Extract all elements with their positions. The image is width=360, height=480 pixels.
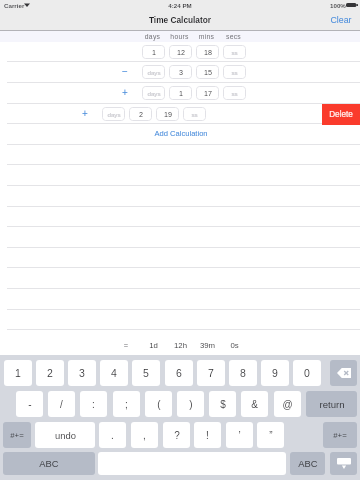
button[interactable]: days <box>102 107 125 121</box>
staticText: #+= <box>10 431 24 440</box>
button[interactable]: 8 <box>229 360 257 386</box>
staticText: @ <box>282 399 293 410</box>
button[interactable]: 18 <box>196 45 219 59</box>
staticText: / <box>60 399 63 410</box>
staticText: days <box>147 90 161 97</box>
button[interactable]: ) <box>177 391 204 417</box>
button[interactable]: ss <box>183 107 206 121</box>
button[interactable]: Backspace <box>330 360 357 386</box>
button[interactable]: . <box>99 422 126 448</box>
button[interactable]: 2 <box>129 107 152 121</box>
staticText: 4:24 PM <box>0 2 360 9</box>
button[interactable]: #+= <box>323 422 357 448</box>
staticText: 2 <box>47 367 53 379</box>
staticText: 12 <box>177 48 185 56</box>
button[interactable]: ; <box>113 391 140 417</box>
button[interactable]: ABC <box>3 452 95 475</box>
button[interactable]: $ <box>209 391 236 417</box>
staticText: Delete <box>329 110 353 119</box>
button[interactable]: 15 <box>196 65 219 79</box>
button[interactable]: ’ <box>226 422 253 448</box>
button[interactable]: 3 <box>169 65 192 79</box>
staticText: ss <box>231 90 238 97</box>
button[interactable]: 1 <box>4 360 32 386</box>
staticText: 9 <box>272 367 278 379</box>
button[interactable]: 12 <box>169 45 192 59</box>
button[interactable]: 17 <box>196 86 219 100</box>
staticText: 0 <box>304 367 310 379</box>
button[interactable]: - <box>16 391 43 417</box>
button[interactable]: ” <box>257 422 284 448</box>
staticText: ) <box>189 399 193 410</box>
staticText: 100% <box>330 2 346 9</box>
button[interactable]: , <box>131 422 158 448</box>
staticText: − <box>118 66 132 77</box>
staticText: $ <box>220 399 226 410</box>
staticText: 39m <box>196 341 219 350</box>
staticText: = <box>119 341 133 349</box>
button[interactable]: ! <box>194 422 221 448</box>
button[interactable]: 9 <box>261 360 289 386</box>
staticText: : <box>92 399 95 410</box>
button[interactable]: ? <box>163 422 190 448</box>
button[interactable]: return <box>306 391 357 417</box>
staticText: undo <box>55 430 76 441</box>
staticText: ? <box>174 430 180 441</box>
staticText: mins <box>195 33 218 41</box>
button[interactable]: Add Calculation <box>154 129 208 137</box>
button[interactable]: Hide keyboard <box>330 452 357 475</box>
button[interactable]: days <box>142 86 165 100</box>
staticText: ss <box>231 49 238 56</box>
staticText: 2 <box>139 110 143 118</box>
staticText: days <box>107 111 121 118</box>
button[interactable]: 1 <box>142 45 165 59</box>
staticText: 18 <box>204 48 212 56</box>
button[interactable]: Clear <box>323 13 352 27</box>
staticText: 19 <box>164 110 172 118</box>
button[interactable]: 3 <box>68 360 96 386</box>
button[interactable]: 4 <box>100 360 128 386</box>
button[interactable]: / <box>48 391 75 417</box>
button[interactable]: ABC <box>290 452 325 475</box>
staticText: #+= <box>333 431 347 440</box>
staticText: 6 <box>176 367 182 379</box>
button[interactable]: : <box>80 391 107 417</box>
button[interactable]: days <box>142 65 165 79</box>
staticText: , <box>143 430 146 441</box>
staticText: + <box>118 87 132 98</box>
button[interactable]: 6 <box>165 360 193 386</box>
staticText: 3 <box>179 68 183 76</box>
button[interactable]: 7 <box>197 360 225 386</box>
button[interactable]: undo <box>35 422 95 448</box>
button[interactable]: & <box>241 391 268 417</box>
staticText: Time Calculator <box>0 15 360 24</box>
staticText: 15 <box>204 68 212 76</box>
staticText: 4 <box>111 367 117 379</box>
staticText: hours <box>168 33 191 41</box>
staticText: 12h <box>169 341 192 350</box>
button[interactable]: 2 <box>36 360 64 386</box>
button[interactable]: #+= <box>3 422 31 448</box>
staticText: secs <box>222 33 245 41</box>
button[interactable]: 0 <box>293 360 321 386</box>
button[interactable]: ss <box>223 45 246 59</box>
staticText: ’ <box>238 430 241 441</box>
staticText: & <box>251 399 258 410</box>
button[interactable]: ss <box>223 86 246 100</box>
button[interactable]: ( <box>145 391 172 417</box>
button[interactable]: @ <box>274 391 301 417</box>
button[interactable]: 1 <box>169 86 192 100</box>
button[interactable]: ss <box>223 65 246 79</box>
button[interactable]: 19 <box>156 107 179 121</box>
staticText: 3 <box>79 367 85 379</box>
staticText: Clear <box>330 15 352 25</box>
staticText: days <box>147 69 161 76</box>
button[interactable]: Delete <box>322 104 360 125</box>
button[interactable]: 5 <box>132 360 160 386</box>
staticText: 7 <box>208 367 214 379</box>
staticText: ABC <box>39 458 59 469</box>
staticText: 1d <box>142 341 165 350</box>
staticText: ss <box>191 111 198 118</box>
staticText: 8 <box>240 367 246 379</box>
